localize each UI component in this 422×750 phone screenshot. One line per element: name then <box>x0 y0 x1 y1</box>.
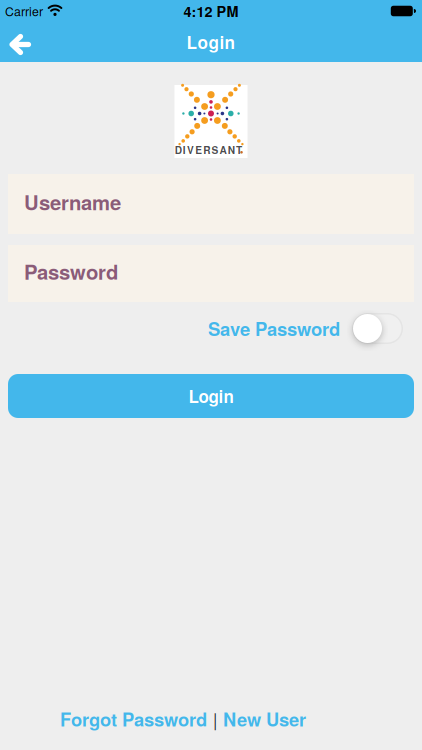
staticText: T <box>236 142 242 157</box>
button[interactable]: Forgot Password <box>60 706 207 732</box>
button[interactable]: New User <box>223 706 306 732</box>
button[interactable]: Username <box>8 174 414 234</box>
staticText: V <box>187 142 194 157</box>
button[interactable]: Save Password <box>352 313 403 344</box>
button[interactable]: Password <box>8 245 414 302</box>
staticText: Login <box>188 384 233 408</box>
staticText: Login <box>186 30 235 54</box>
staticText: New User <box>223 706 306 732</box>
staticText: E <box>195 142 202 157</box>
staticText: R <box>203 142 210 157</box>
button[interactable]: Back <box>0 22 31 62</box>
staticText: Carrier <box>5 2 43 20</box>
staticText: Password <box>24 257 118 286</box>
staticText: | <box>213 707 217 731</box>
button[interactable]: Login <box>8 374 414 418</box>
staticText: I <box>183 142 186 157</box>
staticText: Username <box>24 187 121 217</box>
staticText: A <box>220 142 227 157</box>
staticText: D <box>175 142 182 157</box>
staticText: S <box>211 142 218 157</box>
staticText: Forgot Password <box>60 706 207 732</box>
staticText: Save Password <box>208 315 340 342</box>
staticText: N <box>228 142 235 157</box>
staticText: 4:12 PM <box>183 1 238 21</box>
